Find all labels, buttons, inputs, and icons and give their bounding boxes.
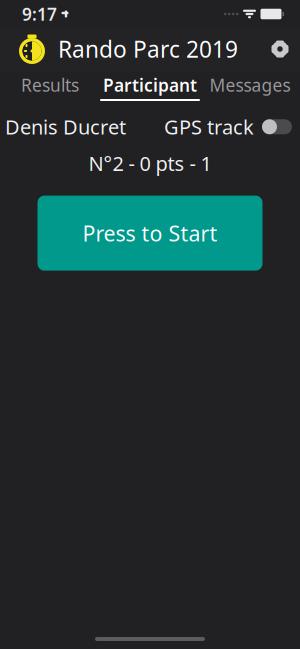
- button[interactable]: GPS track: [254, 119, 292, 134]
- button[interactable]: Press to Start: [37, 196, 262, 271]
- button[interactable]: Participant: [100, 71, 200, 104]
- staticText: Press to Start: [82, 219, 217, 247]
- staticText: 9:17: [22, 2, 57, 25]
- staticText: Rando Parc 2019: [58, 34, 238, 64]
- staticText: Participant: [103, 73, 197, 96]
- staticText: Denis Ducret: [5, 113, 126, 140]
- staticText: Results: [21, 73, 79, 96]
- button[interactable]: Settings: [260, 28, 300, 70]
- staticText: GPS track: [164, 113, 254, 140]
- staticText: N°2 - 0 pts - 1: [88, 150, 211, 177]
- staticText: Messages: [209, 73, 290, 96]
- button[interactable]: Results: [0, 71, 100, 104]
- button[interactable]: Messages: [200, 71, 300, 104]
